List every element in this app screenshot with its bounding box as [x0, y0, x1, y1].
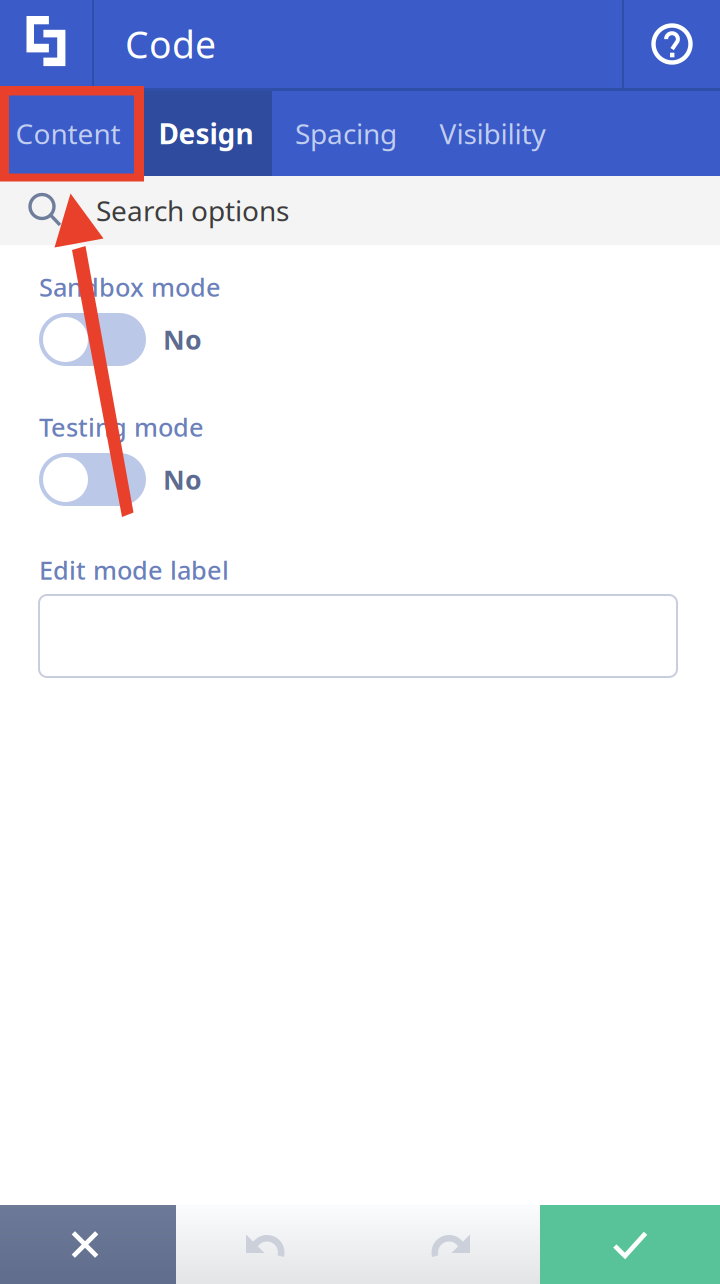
button[interactable] — [39, 595, 677, 677]
staticText: Search options — [96, 192, 289, 229]
button[interactable]: Design — [143, 91, 272, 176]
button[interactable]: Redo — [358, 1205, 540, 1284]
staticText: Design — [158, 115, 253, 152]
button[interactable]: Confirm — [540, 1205, 720, 1284]
staticText: Spacing — [295, 115, 397, 152]
button[interactable]: Search options — [0, 176, 720, 245]
button[interactable]: Visibility — [420, 91, 565, 176]
button[interactable]: Help — [624, 0, 720, 88]
button[interactable]: Content — [0, 91, 143, 176]
staticText: Visibility — [439, 115, 545, 152]
staticText: Sandbox mode — [39, 270, 221, 304]
staticText: Edit mode label — [39, 553, 229, 587]
staticText: Testing mode — [39, 410, 204, 444]
staticText: Content — [15, 115, 120, 152]
button[interactable]: No — [39, 453, 720, 506]
staticText: No — [163, 322, 202, 357]
button[interactable]: Home — [0, 0, 92, 88]
staticText: No — [163, 462, 202, 497]
button[interactable]: No — [39, 313, 720, 366]
button[interactable]: Undo — [176, 1205, 358, 1284]
staticText: Code — [125, 19, 216, 69]
button[interactable]: Cancel — [0, 1205, 176, 1284]
button[interactable]: Spacing — [272, 91, 420, 176]
